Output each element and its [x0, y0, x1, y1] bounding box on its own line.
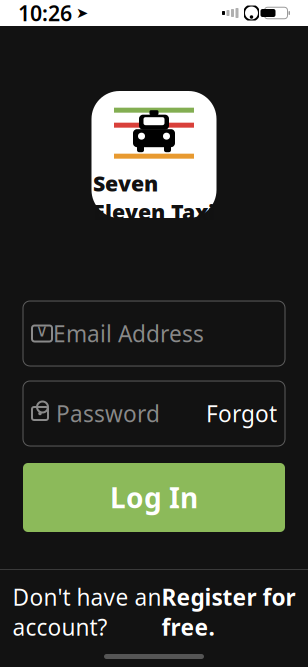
staticText: Don't have an account? — [12, 582, 161, 642]
staticText: Password — [56, 398, 160, 428]
staticText: ➤ — [76, 5, 88, 21]
button[interactable]: ∨ — [23, 301, 285, 366]
staticText: 10:26 — [18, 0, 72, 27]
button[interactable]: Password — [23, 381, 285, 446]
button[interactable]: Log In — [23, 463, 285, 532]
button[interactable]: Don't have an account? — [0, 570, 308, 654]
staticText: ∨ — [35, 321, 48, 340]
staticText: Seven Eleven Taxi — [93, 169, 215, 226]
staticText: Forgot — [206, 398, 277, 428]
staticText: Email Address — [53, 318, 204, 348]
staticText: Register for free. — [161, 582, 295, 642]
staticText: Log In — [110, 479, 198, 516]
